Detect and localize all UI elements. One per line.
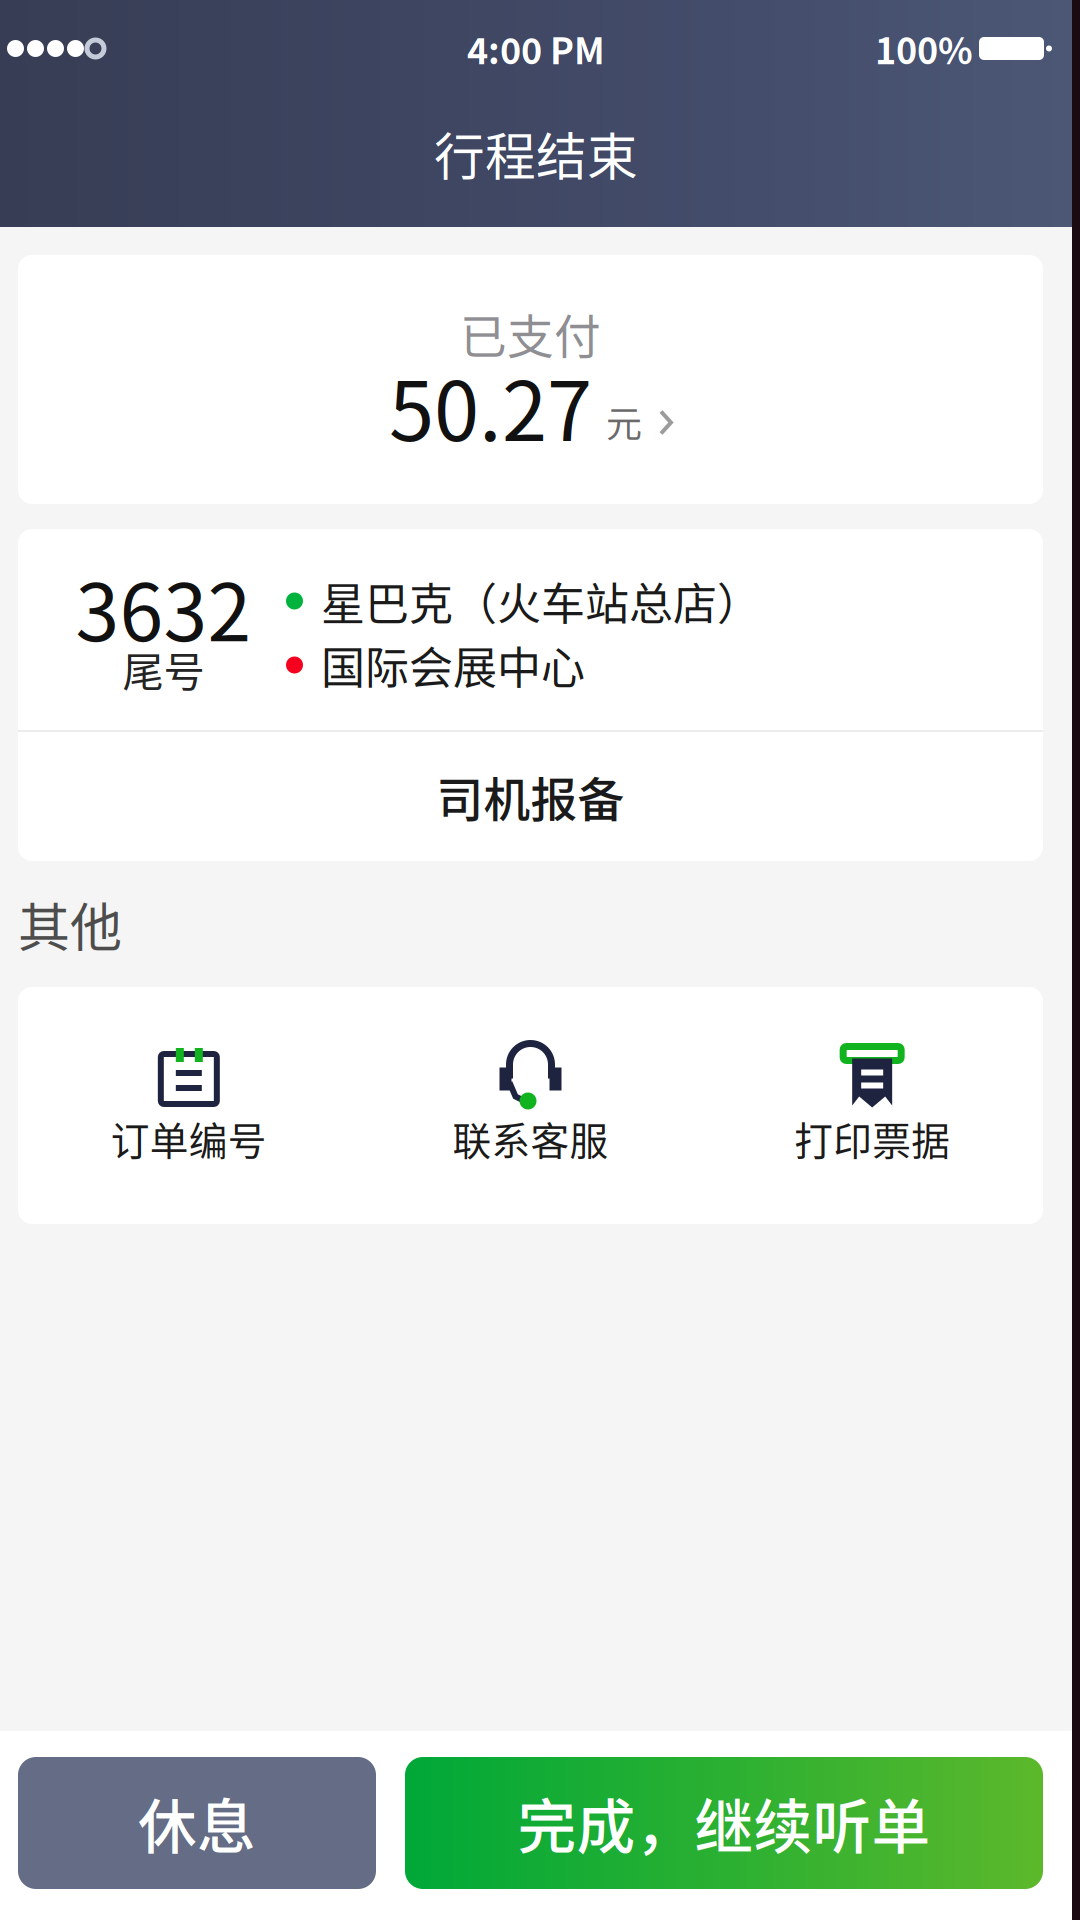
staticText: 已支付: [460, 300, 601, 367]
staticText: 3632: [75, 550, 251, 664]
button[interactable]: 司机报备: [18, 732, 1043, 861]
staticText: 休息: [138, 1780, 256, 1865]
staticText: 司机报备: [436, 763, 624, 830]
staticText: 尾号: [122, 639, 204, 699]
staticText: 其他: [18, 886, 122, 962]
button[interactable]: 休息: [18, 1757, 376, 1889]
button[interactable]: 订单编号: [18, 987, 360, 1224]
staticText: 元: [606, 395, 642, 447]
staticText: 星巴克（火车站总店）: [321, 569, 761, 633]
staticText: 50.27: [389, 347, 592, 464]
button[interactable]: 打印票据: [701, 987, 1043, 1224]
staticText: 订单编号: [111, 1110, 267, 1166]
staticText: 国际会展中心: [321, 633, 585, 697]
staticText: 完成，继续听单: [517, 1780, 930, 1865]
button[interactable]: 已支付: [18, 255, 1043, 504]
staticText: 100%: [875, 22, 973, 74]
staticText: 联系客服: [452, 1110, 608, 1166]
button[interactable]: 联系客服: [360, 987, 701, 1224]
staticText: 行程结束: [434, 117, 638, 190]
staticText: 4:00 PM: [467, 22, 605, 74]
staticText: 打印票据: [794, 1110, 950, 1166]
button[interactable]: 完成，继续听单: [405, 1757, 1043, 1889]
